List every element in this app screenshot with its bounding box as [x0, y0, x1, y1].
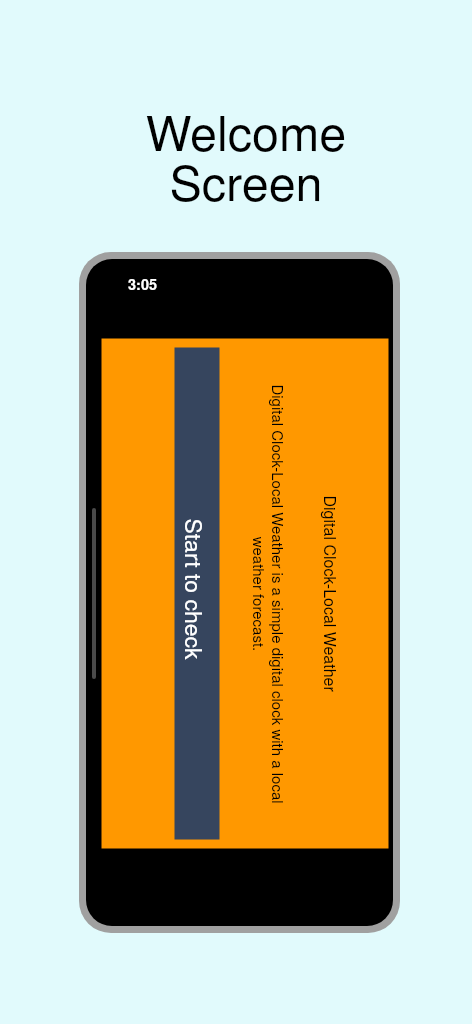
- staticText: 3:05: [128, 274, 158, 295]
- button[interactable]: Start to check: [174, 347, 219, 839]
- staticText: Digital Clock-Local Weather: [318, 495, 341, 692]
- staticText: Welcome Screen: [10, 95, 472, 215]
- staticText: Digital Clock-Local Weather is a simple …: [247, 381, 288, 806]
- staticText: Start to check: [177, 518, 210, 660]
